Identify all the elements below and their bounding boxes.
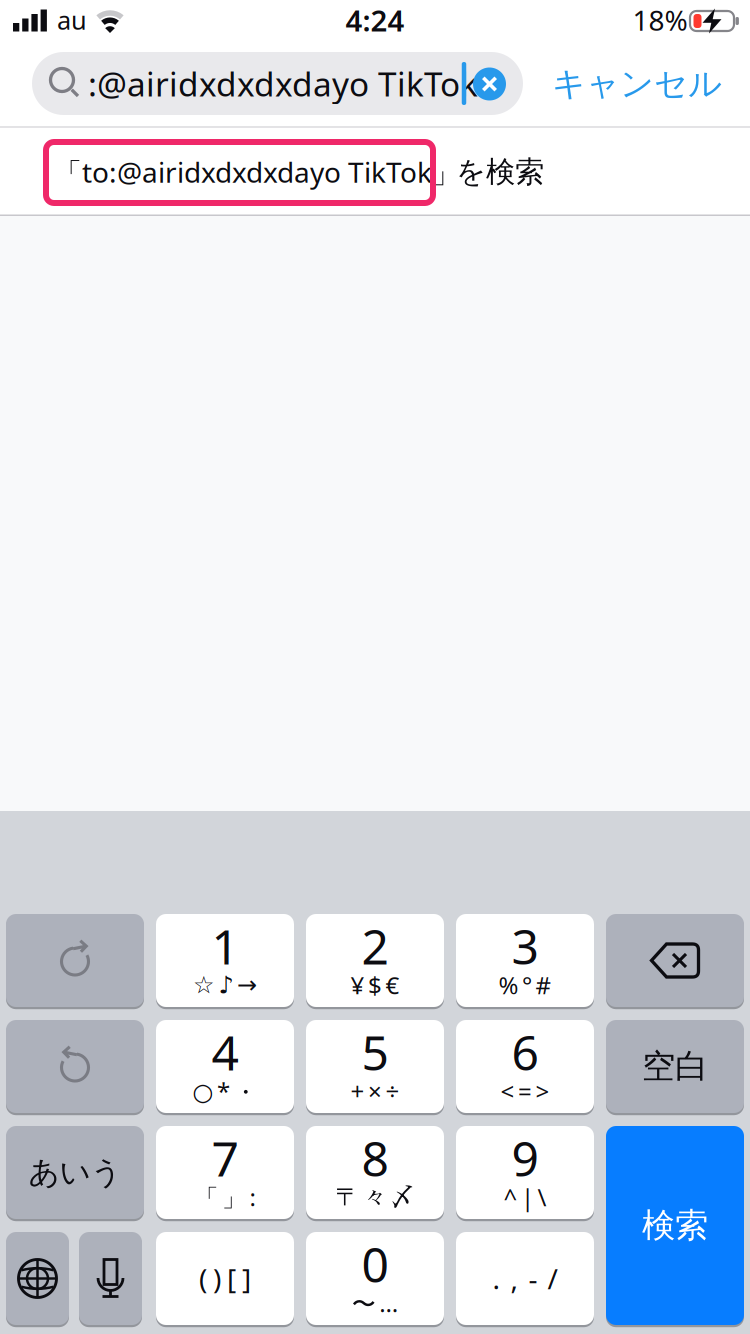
button[interactable]: あいう <box>6 1124 144 1220</box>
button[interactable]: 検索 <box>606 1124 744 1326</box>
button[interactable]: 5 <box>306 1018 444 1114</box>
staticText: ☆♪→ <box>193 971 257 999</box>
button[interactable]: 8 <box>306 1124 444 1220</box>
button[interactable]: やり直す <box>6 912 144 1008</box>
staticText: 2 <box>361 914 388 978</box>
button[interactable]: 9 <box>456 1124 594 1220</box>
staticText: ¥$€ <box>350 969 399 1001</box>
staticText: 3 <box>511 914 538 978</box>
staticText: 「to:@airidxdxdxdayo TikTok」 <box>54 153 460 191</box>
staticText: +×÷ <box>350 1075 399 1107</box>
staticText: 空白 <box>642 1046 708 1087</box>
staticText: 8 <box>361 1126 388 1190</box>
button[interactable]: .,-/ <box>456 1230 594 1326</box>
staticText: <=> <box>500 1075 549 1107</box>
button[interactable]: 音声入力 <box>79 1230 142 1326</box>
staticText: au <box>57 3 87 37</box>
staticText: ^|\ <box>503 1181 546 1213</box>
staticText: 〜… <box>352 1287 398 1319</box>
staticText: 0 <box>361 1232 388 1296</box>
button[interactable]: 7 <box>156 1124 294 1220</box>
button[interactable]: ()[] <box>156 1230 294 1326</box>
staticText: あいう <box>28 1154 121 1191</box>
staticText: .,-/ <box>492 1260 557 1297</box>
staticText: 4:24 <box>345 0 404 39</box>
staticText: %°# <box>498 969 551 1001</box>
staticText: 検索 <box>642 1205 708 1246</box>
staticText: ()[] <box>199 1260 251 1297</box>
staticText: 「」: <box>194 1181 255 1213</box>
button[interactable]: 3 <box>456 912 594 1008</box>
staticText: :@airidxdxdxdayo TikTok <box>88 61 478 106</box>
button[interactable]: 「to:@airidxdxdxdayo TikTok」 <box>0 0 750 88</box>
button[interactable]: 削除 <box>606 912 744 1008</box>
button[interactable]: キャンセル <box>542 54 732 114</box>
button[interactable]: Clear text <box>469 64 509 104</box>
button[interactable]: 2 <box>306 912 444 1008</box>
staticText: 5 <box>361 1020 388 1084</box>
button[interactable]: 空白 <box>606 1018 744 1114</box>
button[interactable]: 1 <box>156 912 294 1008</box>
staticText: 18% <box>632 1 687 39</box>
staticText: 6 <box>511 1020 538 1084</box>
button[interactable]: 0 <box>306 1230 444 1326</box>
button[interactable]: 元に戻す <box>6 1018 144 1114</box>
staticText: を検索 <box>456 154 544 190</box>
staticText: 7 <box>211 1126 238 1190</box>
button[interactable]: Search field <box>0 0 527 83</box>
button[interactable]: 4 <box>156 1018 294 1114</box>
staticText: 4 <box>211 1020 238 1084</box>
staticText: 1 <box>211 914 238 978</box>
staticText: 〒々〆 <box>335 1182 414 1212</box>
button[interactable]: 次のキーボード <box>6 1230 69 1326</box>
button[interactable]: 6 <box>456 1018 594 1114</box>
staticText: ○*・ <box>192 1075 257 1107</box>
staticText: 9 <box>511 1126 538 1190</box>
staticText: キャンセル <box>552 63 722 104</box>
